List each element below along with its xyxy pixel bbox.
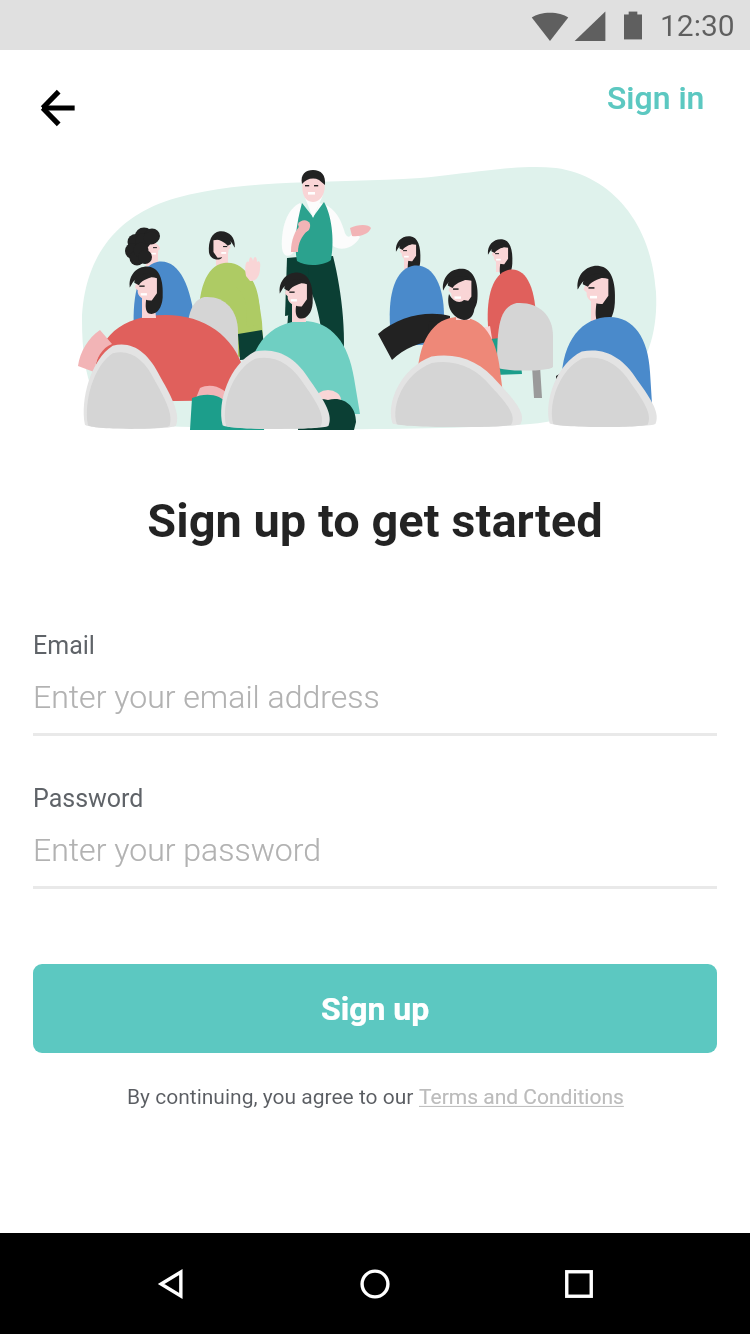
staticText: Enter your email address: [33, 678, 380, 716]
staticText: Sign up: [321, 990, 430, 1028]
button[interactable]: Back: [28, 78, 88, 138]
button[interactable]: Back: [140, 1252, 204, 1316]
staticText: Sign up to get started: [0, 493, 750, 548]
staticText: Terms and Conditions: [419, 1085, 624, 1110]
staticText: Sign in: [607, 79, 705, 117]
button[interactable]: Sign in: [603, 71, 709, 125]
button[interactable]: Sign up: [33, 964, 717, 1053]
button[interactable]: Recent apps: [547, 1252, 611, 1316]
staticText: Email: [33, 631, 95, 660]
staticText: Enter your password: [33, 831, 321, 869]
button[interactable]: Home: [343, 1252, 407, 1316]
staticText: By continuing, you agree to our: [127, 1085, 419, 1110]
staticText: 12:30: [660, 8, 735, 43]
staticText: Password: [33, 784, 144, 813]
button[interactable]: Terms and Conditions: [419, 1085, 624, 1110]
